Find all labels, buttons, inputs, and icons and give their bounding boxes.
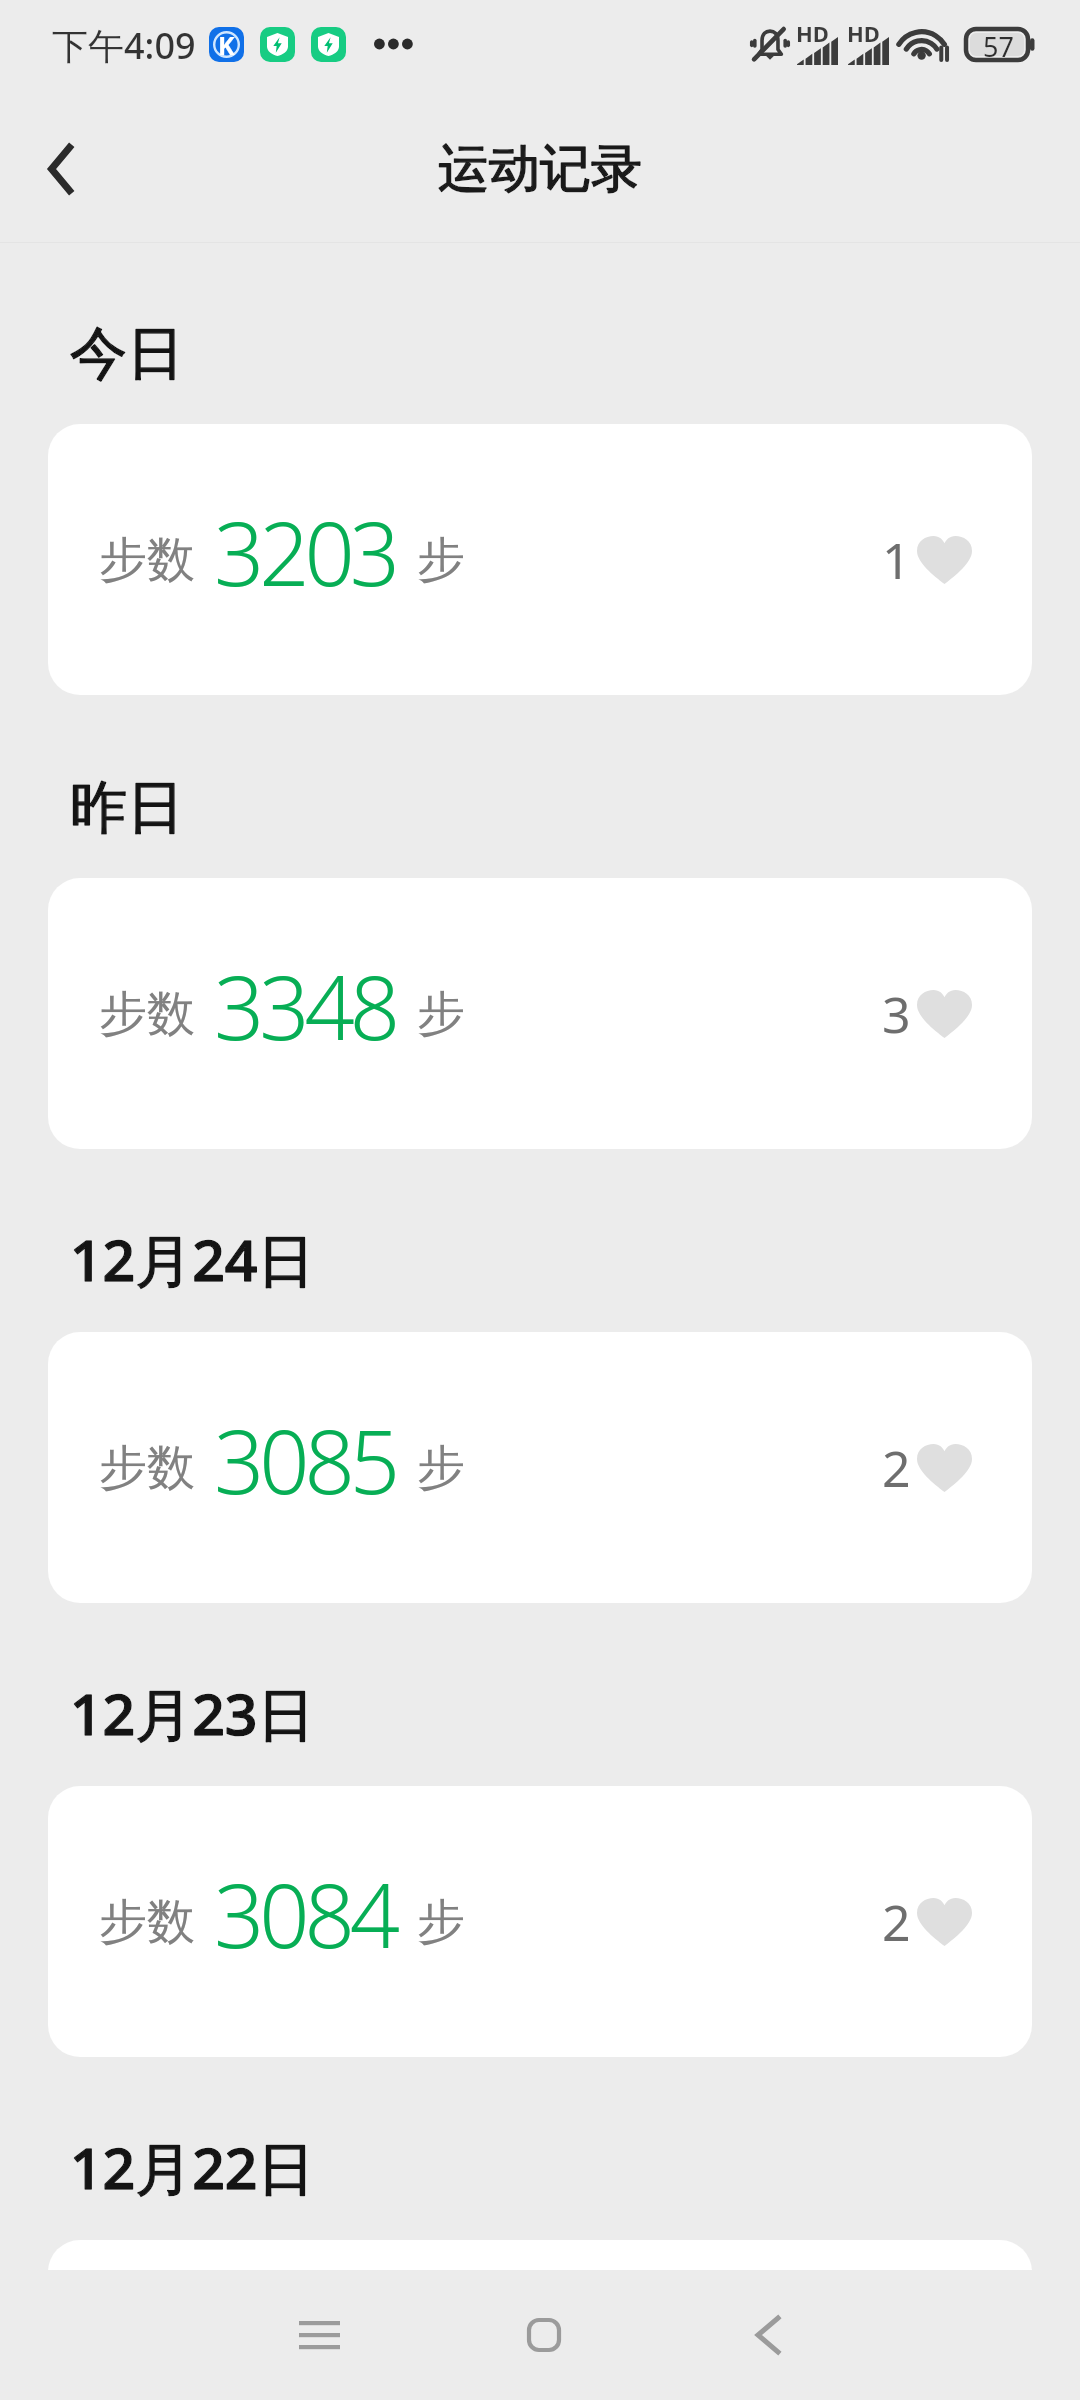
staticText: 步数 bbox=[99, 1892, 195, 1952]
staticText: HD bbox=[796, 18, 829, 48]
staticText: 步 bbox=[417, 530, 465, 590]
staticText: 运动记录 bbox=[438, 137, 642, 201]
staticText: 12月23日 bbox=[70, 1674, 1080, 1752]
staticText: 12月22日 bbox=[70, 2128, 1080, 2206]
staticText: 步 bbox=[417, 984, 465, 1044]
staticText: 3203 bbox=[214, 492, 395, 612]
staticText: 今日 bbox=[70, 318, 1080, 390]
button[interactable]: Home bbox=[489, 2280, 599, 2390]
staticText: 下午4:09 bbox=[52, 21, 196, 70]
staticText: 今日 bbox=[70, 318, 1080, 390]
staticText: 57 bbox=[983, 28, 1014, 59]
staticText: 3085 bbox=[214, 1400, 395, 1520]
staticText: 步数 bbox=[99, 1438, 195, 1498]
staticText: 运动记录 bbox=[438, 137, 642, 201]
staticText: 3 bbox=[882, 980, 911, 1048]
button[interactable]: 步数 bbox=[48, 1332, 1032, 1603]
staticText: 步数 bbox=[99, 984, 195, 1044]
staticText: 1 bbox=[882, 526, 911, 594]
staticText: HD bbox=[847, 18, 880, 48]
staticText: 2 bbox=[882, 1434, 911, 1502]
staticText: 12月24日 bbox=[70, 1220, 1080, 1298]
button[interactable]: 步数 bbox=[48, 1786, 1032, 2057]
button[interactable]: Back bbox=[24, 133, 96, 205]
staticText: 昨日 bbox=[70, 772, 1080, 844]
staticText: 12月24日 bbox=[70, 1220, 1080, 1298]
staticText: 3084 bbox=[214, 1854, 395, 1974]
button[interactable]: Back bbox=[713, 2280, 823, 2390]
staticText: 昨日 bbox=[70, 772, 1080, 844]
staticText: 12月23日 bbox=[70, 1674, 1080, 1752]
staticText: 步 bbox=[417, 1892, 465, 1952]
staticText: 步 bbox=[417, 1438, 465, 1498]
button[interactable]: 步数 bbox=[48, 424, 1032, 695]
staticText: 3348 bbox=[214, 946, 395, 1066]
button[interactable]: 步数 bbox=[48, 878, 1032, 1149]
button[interactable]: Recent apps bbox=[264, 2280, 374, 2390]
staticText: 步数 bbox=[99, 530, 195, 590]
staticText: 12月22日 bbox=[70, 2128, 1080, 2206]
staticText: K bbox=[218, 28, 235, 62]
staticText: 2 bbox=[882, 1888, 911, 1956]
